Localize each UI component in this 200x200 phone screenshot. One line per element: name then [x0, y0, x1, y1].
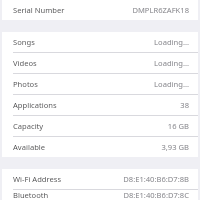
staticText: Serial Number — [13, 5, 65, 15]
button[interactable]: Bluetooth — [2, 190, 198, 200]
button[interactable]: Capacity — [2, 116, 198, 136]
staticText: Photos — [13, 79, 38, 89]
staticText: D8:E1:40:B6:D7:8C — [123, 190, 189, 200]
button[interactable]: Photos — [2, 74, 198, 94]
staticText: Songs — [13, 37, 35, 47]
staticText: Loading... — [154, 58, 189, 68]
staticText: Bluetooth — [13, 190, 49, 200]
staticText: Wi-Fi Address — [13, 174, 62, 184]
button[interactable]: Applications — [2, 95, 198, 115]
button[interactable]: Serial Number — [2, 0, 198, 20]
staticText: D8:E1:40:B6:D7:8B — [123, 174, 189, 184]
button[interactable]: Videos — [2, 53, 198, 73]
staticText: 16 GB — [167, 121, 189, 131]
staticText: Videos — [13, 58, 37, 68]
staticText: Available — [13, 142, 46, 152]
staticText: Capacity — [13, 121, 44, 131]
staticText: Loading... — [154, 37, 189, 47]
staticText: 3,93 GB — [161, 142, 189, 152]
button[interactable]: Songs — [2, 32, 198, 52]
button[interactable]: Available — [2, 137, 198, 157]
staticText: Applications — [13, 100, 57, 110]
button[interactable]: Wi-Fi Address — [2, 169, 198, 189]
staticText: 38 — [180, 100, 189, 110]
staticText: DMPLR6ZAFK18 — [132, 5, 189, 15]
staticText: Loading... — [154, 79, 189, 89]
